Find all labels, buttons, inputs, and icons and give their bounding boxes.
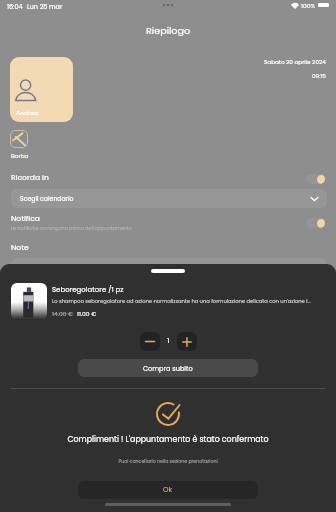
button[interactable]: Ricorda in toggle [306, 174, 325, 184]
staticText: Complimenti ! L'appuntamento è stato con… [0, 434, 336, 445]
staticText: Sabato 20 aprile 2024 [264, 58, 326, 66]
staticText: Lo shampoo seboregolatore ad azione norm… [52, 298, 311, 305]
button[interactable]: Decrease quantity [140, 332, 160, 351]
button[interactable]: Compra subito [78, 359, 258, 377]
staticText: Riepilogo [146, 24, 191, 37]
staticText: Scegli calendario [20, 194, 74, 203]
staticText: 100% [301, 2, 316, 10]
staticText: 09:15 [312, 72, 326, 80]
staticText: 14.00 € [52, 310, 73, 318]
staticText: Barba [11, 152, 29, 160]
button[interactable]: Ok [78, 481, 258, 499]
staticText: Seboregolatore /1 pz [52, 285, 124, 295]
staticText: Ricorda in [11, 172, 49, 183]
button[interactable]: Barba [10, 130, 28, 148]
staticText: 11.00 € [77, 310, 97, 318]
staticText: Le notifiche avvengano prima dell'appunt… [11, 225, 132, 232]
staticText: 16:04 [7, 2, 23, 11]
staticText: Compra subito [143, 364, 193, 373]
button[interactable]: Increase quantity [177, 332, 197, 351]
staticText: Note [11, 242, 29, 253]
button[interactable]: Notifica toggle [306, 218, 325, 228]
staticText: 1 [167, 335, 170, 346]
staticText: Puoi cancellarlo nella sezione prenotazi… [0, 458, 336, 465]
button[interactable]: Andrea [10, 57, 73, 122]
staticText: Notifica [11, 213, 40, 224]
button[interactable]: Scegli calendario [11, 189, 327, 208]
staticText: Andrea [16, 109, 38, 117]
staticText: Lun 25 mar [27, 2, 63, 11]
staticText: Ok [163, 485, 173, 495]
